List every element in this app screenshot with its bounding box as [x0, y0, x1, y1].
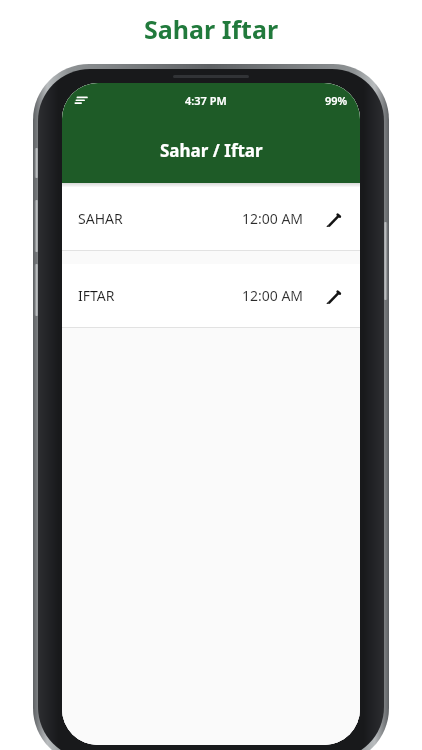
- staticText: 12:00 AM: [242, 286, 304, 305]
- button[interactable]: IFTAR: [62, 264, 360, 327]
- staticText: Sahar Iftar: [144, 12, 279, 46]
- staticText: 99%: [325, 93, 348, 108]
- staticText: Sahar / Iftar: [160, 139, 263, 162]
- button[interactable]: Edit SAHAR time: [320, 206, 346, 232]
- button[interactable]: SAHAR: [62, 187, 360, 250]
- button[interactable]: Edit IFTAR time: [320, 283, 346, 309]
- staticText: 12:00 AM: [242, 209, 304, 228]
- staticText: SAHAR: [78, 209, 123, 228]
- staticText: 4:37 PM: [185, 93, 227, 108]
- staticText: IFTAR: [78, 286, 115, 305]
